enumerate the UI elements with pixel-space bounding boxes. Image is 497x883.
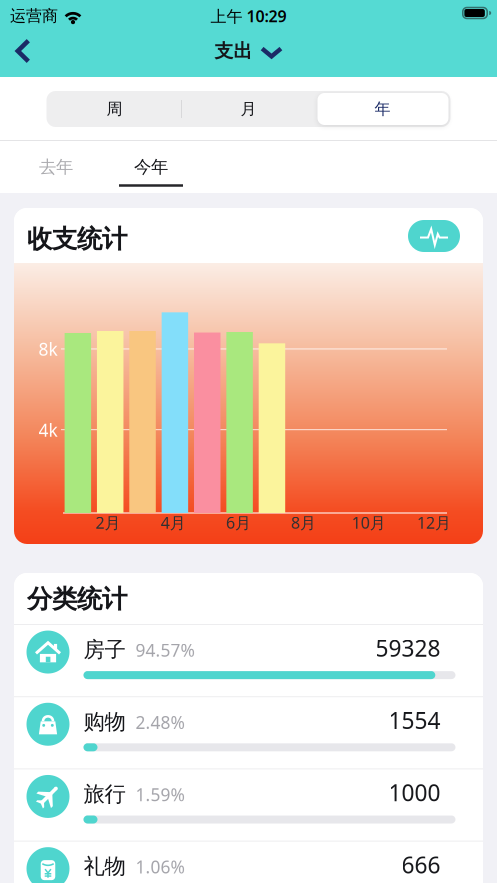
staticText: 礼物 — [83, 853, 125, 879]
staticText: 支出 — [214, 39, 252, 62]
button[interactable]: 去年 — [9, 145, 103, 189]
staticText: 8月 — [291, 512, 316, 533]
staticText: 上午 10:29 — [210, 5, 286, 27]
staticText: 94.57% — [135, 639, 194, 662]
button[interactable]: 月 — [181, 91, 315, 127]
staticText: 4k — [38, 418, 57, 441]
staticText: 2.48% — [135, 711, 184, 734]
staticText: 分类统计 — [27, 583, 127, 614]
staticText: 运营商 — [10, 6, 58, 26]
staticText: 6月 — [226, 512, 251, 533]
staticText: 1.59% — [135, 783, 184, 806]
button[interactable]: 年 — [315, 91, 449, 127]
staticText: 旅行 — [83, 781, 125, 807]
staticText: 59328 — [375, 633, 440, 663]
button[interactable]: 周 — [47, 91, 181, 127]
staticText: 12月 — [417, 512, 451, 533]
staticText: 8k — [38, 337, 57, 360]
button[interactable]: 支出 — [214, 39, 282, 62]
staticText: 收支统计 — [27, 223, 127, 254]
staticText: 月 — [240, 99, 256, 119]
staticText: 房子 — [83, 637, 125, 663]
staticText: 今年 — [134, 156, 168, 178]
staticText: 10月 — [352, 512, 386, 533]
staticText: 4月 — [161, 512, 186, 533]
button[interactable]: Back — [0, 29, 48, 72]
button[interactable]: 今年 — [104, 145, 198, 189]
staticText: 去年 — [39, 156, 73, 178]
button[interactable]: 旅行 — [12, 769, 484, 841]
staticText: 年 — [374, 99, 390, 119]
button[interactable]: 购物 — [12, 697, 484, 768]
button[interactable]: Chart — [408, 220, 460, 252]
staticText: 666 — [401, 850, 440, 880]
staticText: 2月 — [95, 512, 120, 533]
staticText: 购物 — [83, 709, 125, 735]
staticText: 1554 — [388, 705, 440, 735]
staticText: 周 — [106, 99, 122, 119]
button[interactable]: 礼物 — [12, 842, 484, 883]
button[interactable]: 房子 — [12, 625, 484, 696]
staticText: 1000 — [388, 777, 440, 807]
staticText: 1.06% — [135, 855, 184, 878]
